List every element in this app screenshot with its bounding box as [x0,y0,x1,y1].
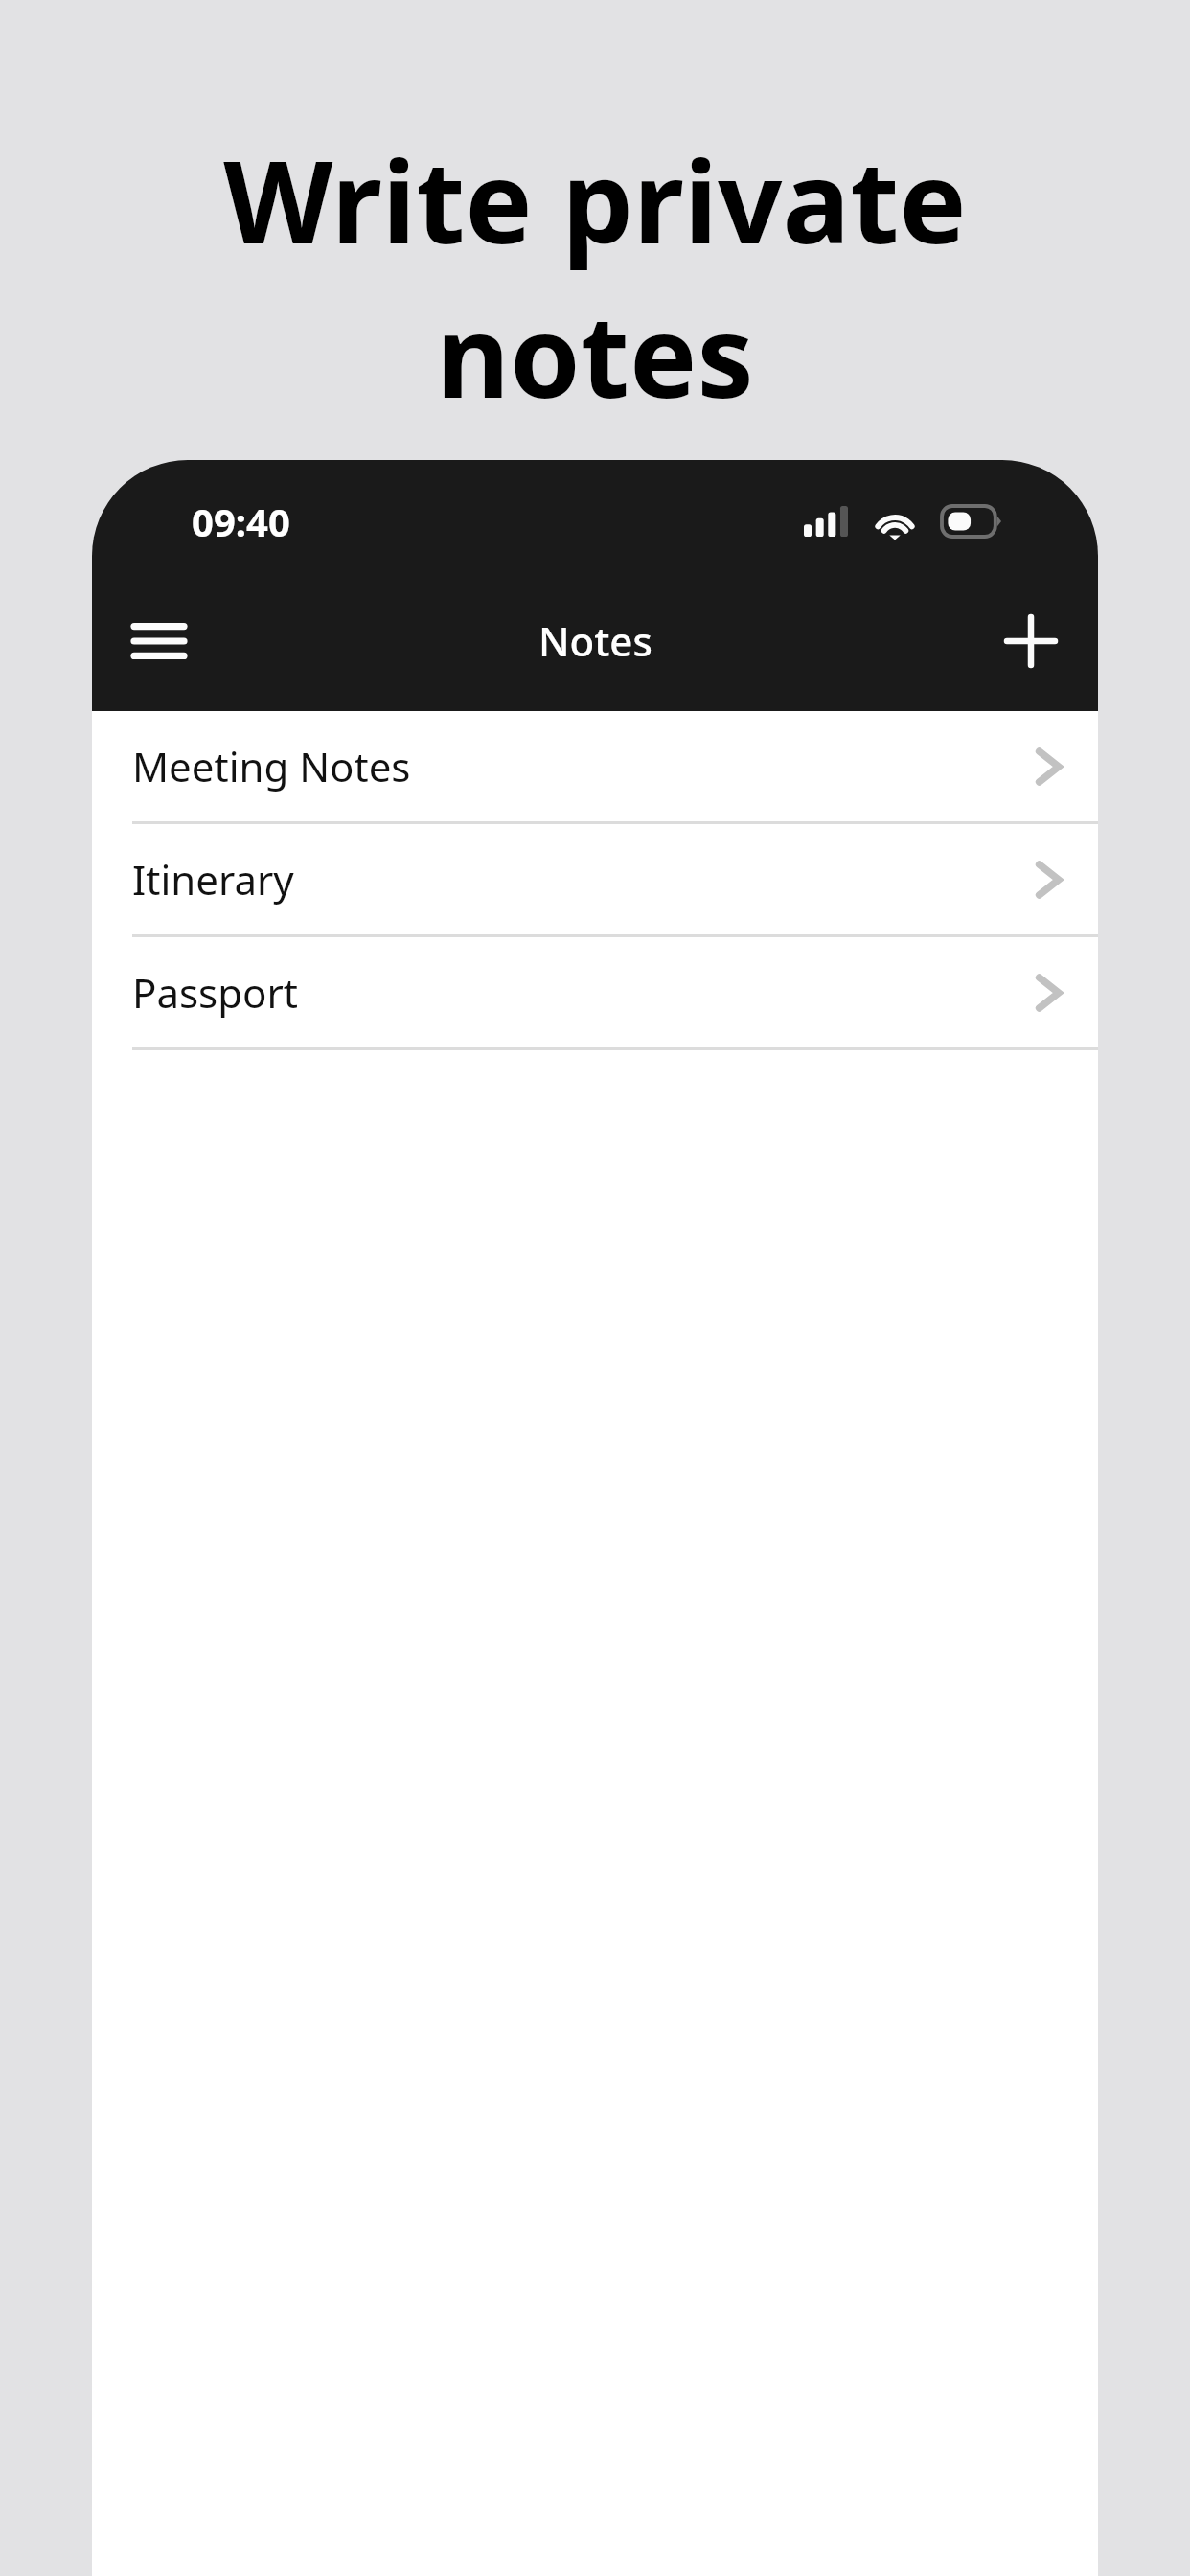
staticText: Meeting Notes [132,739,411,793]
button[interactable]: Menu [111,593,207,689]
staticText: Notes [538,613,652,668]
staticText: notes [436,277,754,431]
staticText: 09:40 [192,495,290,547]
button[interactable]: Passport [92,937,1098,1050]
staticText: Itinerary [132,852,294,907]
button[interactable]: Itinerary [92,824,1098,937]
button[interactable]: Meeting Notes [92,711,1098,824]
button[interactable]: Add note [983,593,1079,689]
staticText: Passport [132,965,298,1020]
staticText: Write private [223,123,967,277]
